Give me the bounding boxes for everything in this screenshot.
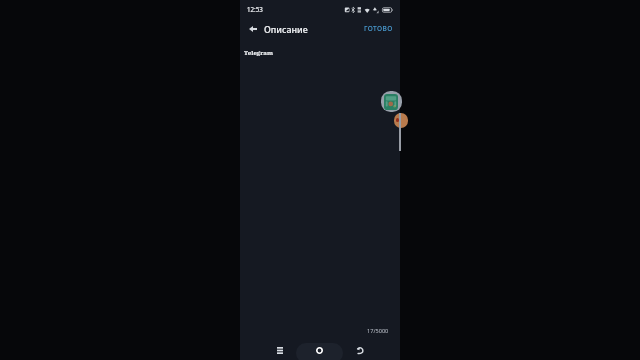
button[interactable]: Back (352, 342, 368, 358)
button[interactable]: Back (244, 18, 261, 39)
button[interactable]: Recent apps (272, 342, 288, 358)
staticText: Описание (264, 23, 308, 35)
staticText: Telegram (244, 48, 274, 56)
button[interactable]: ГОТОВО (359, 18, 398, 39)
staticText: ГОТОВО (364, 24, 393, 33)
staticText: 17/5000 (367, 327, 389, 335)
staticText: 12:53 (247, 5, 263, 13)
button[interactable]: Home (296, 343, 343, 360)
button[interactable]: Sticker preview (381, 91, 402, 112)
